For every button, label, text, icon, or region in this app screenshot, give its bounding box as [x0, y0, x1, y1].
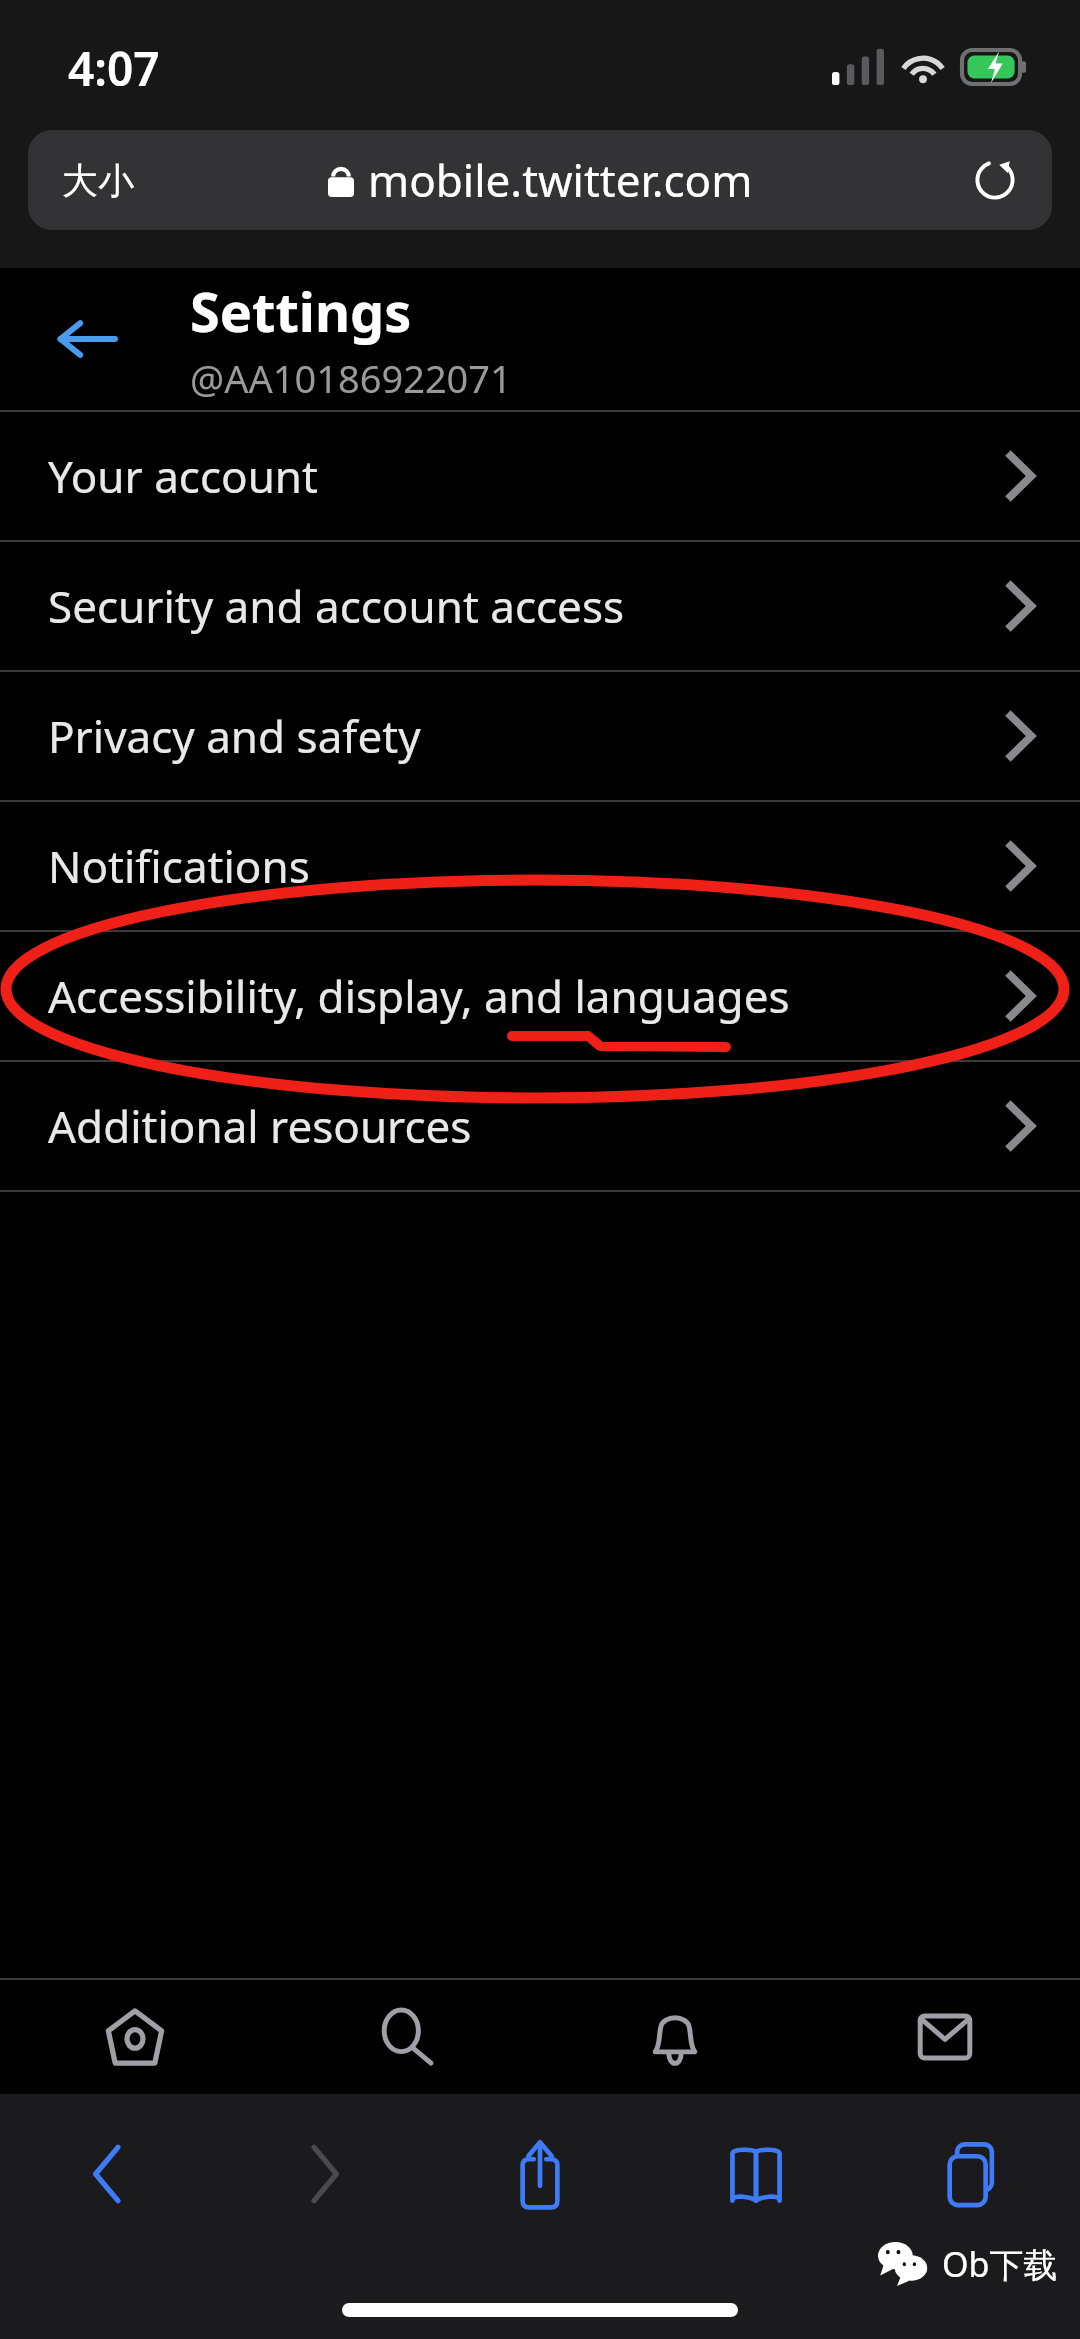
button[interactable]: Back	[0, 2094, 216, 2254]
button[interactable]: Notifications	[540, 1980, 810, 2094]
staticText: Settings	[190, 274, 412, 348]
button[interactable]: Forward	[216, 2094, 432, 2254]
button[interactable]: 大小	[28, 130, 1052, 230]
button[interactable]: Additional resources	[0, 1062, 1080, 1190]
staticText: mobile.twitter.com	[368, 150, 753, 210]
button[interactable]: Messages	[810, 1980, 1080, 2094]
button[interactable]: Tabs	[864, 2094, 1080, 2254]
staticText: @AA10186922071	[190, 352, 512, 404]
button[interactable]: Back	[40, 293, 132, 385]
button[interactable]: Search	[270, 1980, 540, 2094]
staticText: Security and account access	[48, 576, 1006, 636]
staticText: Additional resources	[48, 1096, 1006, 1156]
button[interactable]: Your account	[0, 412, 1080, 540]
staticText: Your account	[48, 446, 1006, 506]
button[interactable]: Privacy and safety	[0, 672, 1080, 800]
staticText: Ob下载	[942, 2241, 1058, 2287]
staticText: Privacy and safety	[48, 706, 1006, 766]
staticText: 4:07	[68, 37, 160, 100]
staticText: Accessibility, display, and languages	[48, 966, 1006, 1026]
button[interactable]: Reload page	[960, 145, 1030, 215]
button[interactable]: Share	[432, 2094, 648, 2254]
button[interactable]: Notifications	[0, 802, 1080, 930]
button[interactable]: Bookmarks	[648, 2094, 864, 2254]
staticText: 大小	[62, 158, 134, 203]
button[interactable]: Home	[0, 1980, 270, 2094]
button[interactable]: Accessibility, display, and languages	[0, 932, 1080, 1060]
staticText: Notifications	[48, 836, 1006, 896]
button[interactable]: Security and account access	[0, 542, 1080, 670]
